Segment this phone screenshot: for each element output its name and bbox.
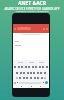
staticText: ANET &ACR xyxy=(0,0,64,6)
staticText: THE FIRST ARABIC KEYBOARD xyxy=(0,9,64,12)
staticText: ARABIC DEVICE SPIRIT FOR GAMERS APP xyxy=(0,7,64,10)
